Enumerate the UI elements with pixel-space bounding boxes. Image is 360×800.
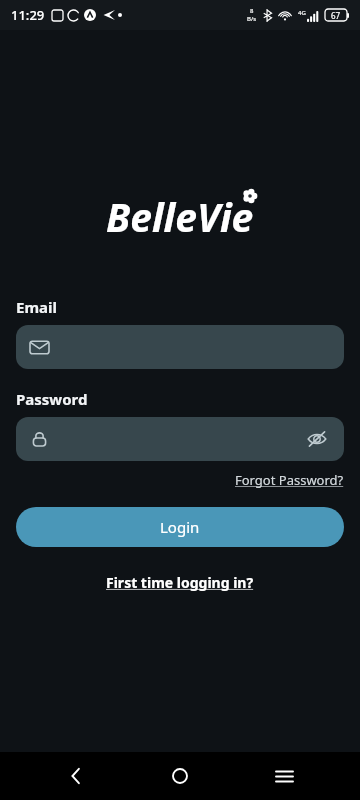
button[interactable]: Recent apps <box>256 752 312 800</box>
button[interactable]: Password input <box>16 417 344 461</box>
button[interactable]: Back <box>48 752 104 800</box>
staticText: 4G <box>298 9 306 17</box>
button[interactable]: Home <box>152 752 208 800</box>
button[interactable]: Login <box>16 507 344 547</box>
button[interactable]: Forgot Password? <box>235 471 344 489</box>
staticText: Email <box>16 297 57 317</box>
staticText: First time logging in? <box>106 573 254 592</box>
staticText: B/s <box>247 15 257 23</box>
staticText: Forgot Password? <box>235 471 344 489</box>
staticText: 8 <box>250 7 254 15</box>
staticText: Password <box>16 389 88 409</box>
staticText: BelleVie <box>106 190 254 243</box>
button[interactable]: Show password <box>304 426 330 452</box>
staticText: 67 <box>331 10 341 21</box>
button[interactable]: Email input <box>16 325 344 369</box>
staticText: Login <box>160 517 200 537</box>
button[interactable]: First time logging in? <box>106 573 254 592</box>
staticText: 11:29 <box>11 6 45 24</box>
